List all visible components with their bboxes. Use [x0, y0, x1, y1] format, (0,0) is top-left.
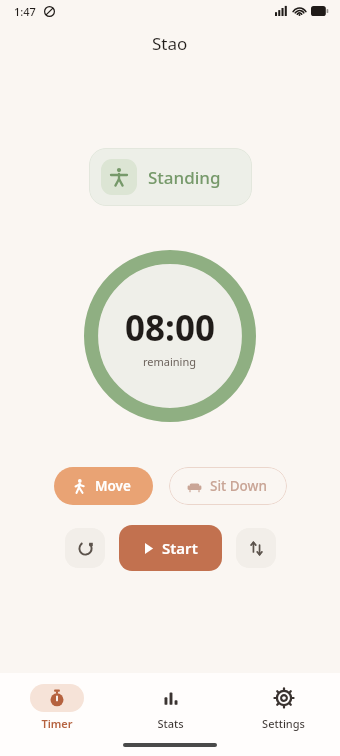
- staticText: remaining: [143, 354, 197, 369]
- staticText: Standing: [148, 166, 221, 189]
- staticText: Start: [162, 538, 198, 558]
- button[interactable]: Reset: [65, 528, 105, 568]
- button[interactable]: Swap: [236, 528, 276, 568]
- staticText: Stats: [157, 716, 184, 731]
- button[interactable]: Settings: [227, 682, 340, 733]
- button[interactable]: Sit Down: [169, 467, 287, 505]
- button[interactable]: Move: [54, 467, 153, 505]
- staticText: Stao: [152, 32, 188, 55]
- staticText: Timer: [41, 716, 73, 731]
- button[interactable]: Start: [119, 525, 222, 571]
- button[interactable]: Standing: [89, 148, 252, 206]
- staticText: Move: [95, 477, 131, 495]
- button[interactable]: Stats: [114, 682, 227, 733]
- staticText: 08:00: [125, 304, 215, 352]
- staticText: Sit Down: [210, 477, 267, 495]
- staticText: Settings: [262, 716, 305, 731]
- staticText: 1:47: [14, 4, 36, 19]
- button[interactable]: Timer: [0, 682, 114, 733]
